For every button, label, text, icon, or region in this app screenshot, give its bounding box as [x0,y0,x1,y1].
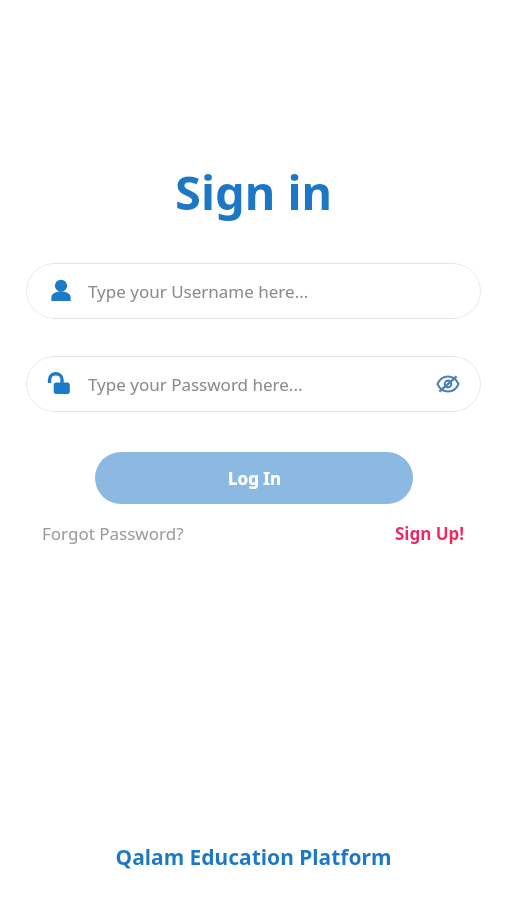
staticText: Sign Up! [395,522,465,545]
button[interactable]: Sign Up! [395,518,465,549]
staticText: Type your Password here... [88,373,433,396]
button[interactable]: Type your Password here... [26,356,481,412]
staticText: Forgot Password? [42,522,184,545]
button[interactable]: Type your Username here... [26,263,481,319]
staticText: Qalam Education Platform [0,843,507,872]
staticText: Type your Username here... [88,280,463,303]
button[interactable]: Forgot Password? [42,518,184,549]
staticText: Sign in [0,160,507,224]
staticText: Log In [228,467,281,490]
button[interactable]: Log In [95,452,413,504]
button[interactable]: Show password [433,369,463,399]
